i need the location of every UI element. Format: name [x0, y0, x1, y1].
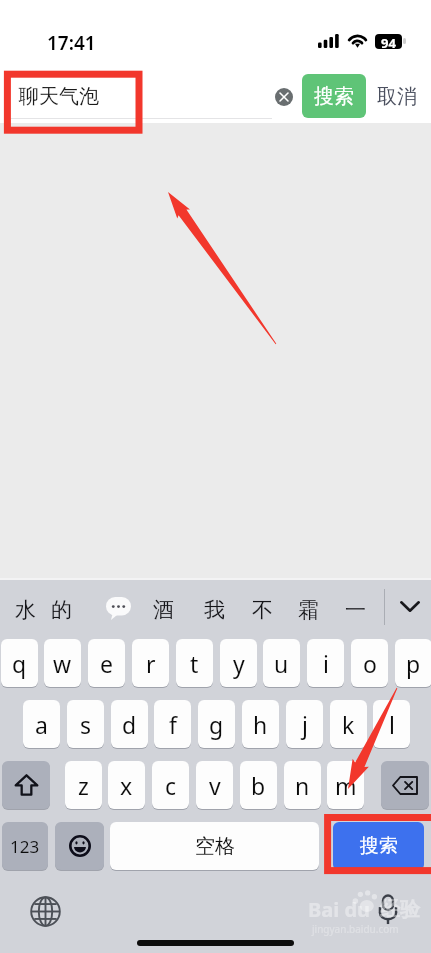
button[interactable]: Clear text — [275, 88, 293, 106]
button[interactable]: x — [108, 761, 145, 809]
button[interactable]: b — [240, 761, 277, 809]
staticText: u — [274, 648, 289, 679]
button[interactable]: s — [67, 700, 104, 748]
staticText: 一 — [345, 597, 366, 623]
staticText: 聊天气泡 — [19, 84, 99, 109]
button[interactable]: Shift — [2, 761, 50, 809]
staticText: e — [100, 648, 113, 679]
button[interactable]: r — [132, 639, 169, 687]
button[interactable]: k — [330, 700, 367, 748]
staticText: 搜索 — [360, 834, 398, 858]
staticText: b — [251, 770, 266, 801]
button[interactable]: 123 — [2, 822, 48, 870]
button[interactable]: 一 — [342, 596, 368, 624]
button[interactable]: w — [44, 639, 81, 687]
button[interactable]: z — [65, 761, 102, 809]
button[interactable]: q — [1, 639, 38, 687]
button[interactable]: Switch language — [25, 891, 65, 931]
button[interactable]: t — [176, 639, 213, 687]
button[interactable]: p — [395, 639, 431, 687]
button[interactable]: c — [152, 761, 189, 809]
button[interactable]: l — [373, 700, 410, 748]
button[interactable]: f — [154, 700, 191, 748]
staticText: i — [323, 648, 329, 679]
staticText: 取消 — [377, 84, 417, 109]
button[interactable]: 搜索 — [302, 74, 366, 118]
staticText: 17:41 — [47, 30, 96, 56]
button[interactable]: 取消 — [372, 74, 422, 118]
button[interactable]: Voice input — [369, 890, 407, 928]
button[interactable]: h — [242, 700, 279, 748]
staticText: x — [120, 770, 133, 801]
button[interactable]: i — [307, 639, 344, 687]
button[interactable]: Emoji keyboard — [55, 822, 104, 870]
staticText: m — [335, 770, 357, 801]
button[interactable]: e — [88, 639, 125, 687]
button[interactable]: d — [111, 700, 148, 748]
staticText: w — [53, 648, 72, 679]
staticText: n — [295, 770, 310, 801]
staticText: r — [146, 648, 156, 679]
staticText: 我 — [204, 597, 225, 623]
button[interactable]: 空格 — [110, 822, 319, 870]
button[interactable]: j — [286, 700, 323, 748]
staticText: h — [253, 709, 268, 740]
staticText: l — [389, 709, 395, 740]
staticText: j — [302, 709, 308, 740]
staticText: 霜 — [298, 597, 319, 623]
staticText: z — [78, 770, 89, 801]
staticText: 的 — [51, 597, 72, 623]
button[interactable]: Backspace — [381, 761, 429, 809]
button[interactable]: Emoji suggestion — [106, 597, 131, 620]
staticText: 酒 — [153, 597, 174, 623]
staticText: jingyan.baidu.com — [312, 922, 399, 936]
button[interactable]: 水 — [12, 596, 38, 624]
staticText: g — [209, 709, 224, 740]
button[interactable]: 的 — [48, 596, 74, 624]
staticText: 经验 — [380, 897, 420, 922]
staticText: 搜索 — [314, 84, 354, 109]
button[interactable]: 搜索 — [333, 822, 424, 870]
staticText: 空格 — [195, 834, 235, 859]
button[interactable]: 我 — [201, 596, 227, 624]
staticText: o — [363, 648, 377, 679]
button[interactable]: 聊天气泡 — [10, 74, 272, 119]
staticText: 水 — [15, 597, 36, 623]
staticText: p — [406, 648, 421, 679]
staticText: 不 — [252, 597, 273, 623]
button[interactable]: o — [351, 639, 388, 687]
staticText: d — [122, 709, 137, 740]
staticText: t — [190, 648, 199, 679]
button[interactable]: a — [23, 700, 60, 748]
staticText: s — [80, 709, 92, 740]
staticText: v — [209, 770, 221, 801]
button[interactable]: u — [263, 639, 300, 687]
staticText: Bai du — [308, 896, 371, 923]
button[interactable]: m — [327, 761, 364, 809]
staticText: q — [12, 648, 27, 679]
staticText: 123 — [10, 835, 40, 858]
button[interactable]: Collapse keyboard — [390, 588, 430, 624]
staticText: y — [233, 648, 245, 679]
staticText: k — [342, 709, 355, 740]
staticText: a — [35, 709, 48, 740]
button[interactable]: 不 — [249, 596, 275, 624]
staticText: f — [169, 709, 177, 740]
button[interactable]: 霜 — [295, 596, 321, 624]
staticText: 94 — [381, 34, 396, 49]
button[interactable]: v — [196, 761, 233, 809]
button[interactable]: y — [220, 639, 257, 687]
staticText: c — [165, 770, 177, 801]
button[interactable]: n — [284, 761, 321, 809]
button[interactable]: g — [198, 700, 235, 748]
button[interactable]: 酒 — [150, 596, 176, 624]
